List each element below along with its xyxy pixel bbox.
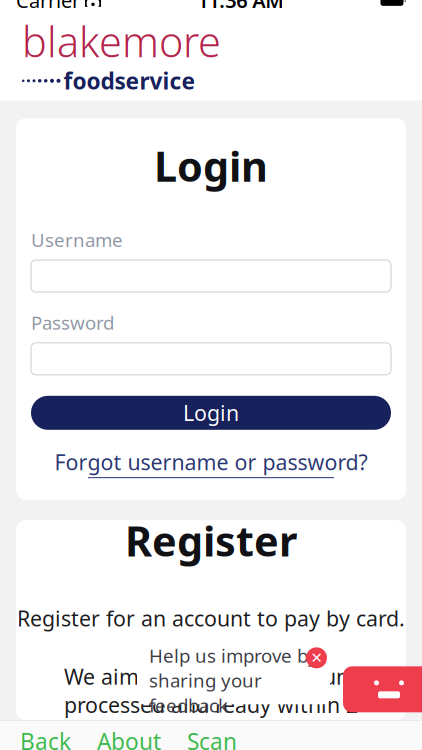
- staticText: foodservice: [63, 66, 195, 96]
- staticText: Register: [125, 513, 297, 568]
- button[interactable]: Forgot username or password?: [31, 442, 391, 484]
- staticText: Login: [183, 399, 239, 427]
- staticText: Scan: [187, 726, 237, 750]
- staticText: Back: [20, 726, 71, 750]
- staticText: About: [97, 726, 161, 750]
- staticText: Login: [154, 138, 268, 193]
- staticText: Password: [31, 310, 114, 335]
- button[interactable]: About: [97, 726, 161, 750]
- button[interactable]: Close feedback prompt: [306, 647, 327, 668]
- button[interactable]: Back: [20, 726, 71, 750]
- staticText: Carrier: [16, 0, 80, 14]
- staticText: Help us improve by sharing your feedback: [149, 643, 318, 718]
- staticText: Forgot username or password?: [54, 448, 367, 476]
- staticText: blakemore: [22, 14, 221, 69]
- button[interactable]: Scan: [187, 726, 237, 750]
- staticText: Username: [31, 227, 123, 252]
- staticText: Register for an account to pay by card.: [17, 604, 405, 632]
- staticText: ✕: [310, 649, 322, 666]
- staticText: We aim to have your account processed an…: [64, 662, 358, 747]
- staticText: 11:36 AM: [197, 0, 284, 14]
- button[interactable]: Login: [31, 396, 391, 430]
